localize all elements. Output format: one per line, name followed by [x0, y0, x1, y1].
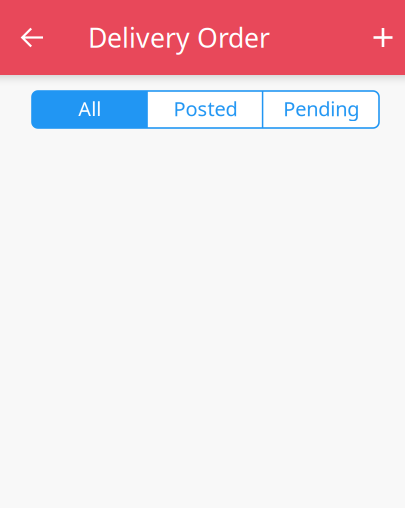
staticText: Delivery Order: [88, 20, 270, 55]
button[interactable]: Back: [0, 0, 65, 75]
staticText: Posted: [173, 95, 237, 122]
staticText: All: [78, 95, 101, 122]
staticText: Pending: [283, 95, 359, 122]
button[interactable]: Posted: [148, 91, 263, 128]
button[interactable]: All: [32, 91, 148, 128]
button[interactable]: Pending: [263, 91, 379, 128]
button[interactable]: Add delivery order: [361, 0, 405, 75]
